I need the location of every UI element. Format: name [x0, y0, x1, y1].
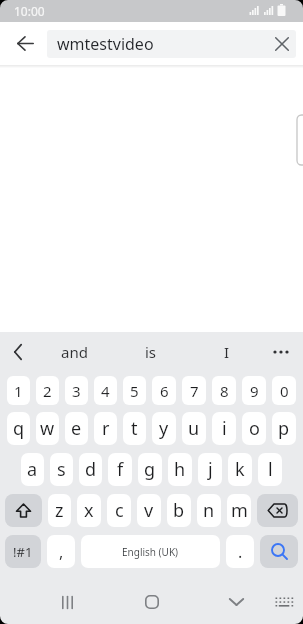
- staticText: ,: [59, 541, 64, 563]
- button[interactable]: u: [182, 412, 206, 445]
- staticText: w: [40, 416, 55, 441]
- staticText: e: [71, 416, 82, 441]
- staticText: I: [224, 342, 230, 362]
- button[interactable]: g: [138, 453, 162, 486]
- button[interactable]: !#1: [5, 535, 41, 568]
- staticText: 1: [14, 381, 23, 401]
- staticText: is: [145, 342, 157, 362]
- staticText: v: [144, 498, 154, 523]
- button[interactable]: h: [168, 453, 192, 486]
- button[interactable]: f: [108, 453, 132, 486]
- staticText: 5: [130, 381, 139, 401]
- staticText: and: [61, 342, 88, 362]
- staticText: t: [131, 416, 138, 441]
- button[interactable]: ,: [47, 535, 75, 568]
- button[interactable]: 2: [36, 376, 59, 405]
- button[interactable]: e: [65, 412, 88, 445]
- staticText: n: [203, 498, 215, 523]
- staticText: 9: [250, 381, 259, 401]
- button[interactable]: j: [198, 453, 222, 486]
- staticText: 8: [220, 381, 229, 401]
- staticText: a: [27, 457, 38, 482]
- button[interactable]: [257, 494, 298, 527]
- staticText: u: [188, 416, 200, 441]
- button[interactable]: 6: [152, 376, 176, 405]
- button[interactable]: 1: [7, 376, 30, 405]
- button[interactable]: d: [79, 453, 102, 486]
- button[interactable]: w: [36, 412, 59, 445]
- staticText: y: [159, 416, 169, 441]
- button[interactable]: 3: [65, 376, 88, 405]
- button[interactable]: [5, 494, 42, 527]
- staticText: z: [55, 498, 64, 523]
- staticText: d: [85, 457, 97, 482]
- staticText: f: [117, 457, 124, 482]
- staticText: 2: [43, 381, 52, 401]
- staticText: j: [208, 457, 213, 482]
- button[interactable]: 7: [182, 376, 206, 405]
- button[interactable]: 0: [272, 376, 296, 405]
- button[interactable]: 9: [242, 376, 266, 405]
- staticText: x: [84, 498, 94, 523]
- button[interactable]: t: [123, 412, 146, 445]
- button[interactable]: m: [227, 494, 251, 527]
- button[interactable]: q: [7, 412, 30, 445]
- staticText: 0: [280, 381, 289, 401]
- staticText: English (UK): [122, 545, 179, 559]
- button[interactable]: p: [272, 412, 296, 445]
- button[interactable]: 5: [123, 376, 146, 405]
- button[interactable]: y: [152, 412, 176, 445]
- button[interactable]: [47, 582, 87, 622]
- staticText: .: [238, 541, 243, 563]
- button[interactable]: and: [44, 332, 104, 372]
- button[interactable]: k: [228, 453, 252, 486]
- button[interactable]: [4, 338, 32, 366]
- button[interactable]: n: [197, 494, 221, 527]
- staticText: g: [144, 457, 156, 482]
- staticText: p: [278, 416, 290, 441]
- staticText: !#1: [13, 543, 33, 561]
- staticText: k: [235, 457, 245, 482]
- button[interactable]: [132, 582, 172, 622]
- staticText: i: [222, 416, 227, 441]
- staticText: 7: [190, 381, 199, 401]
- button[interactable]: [270, 32, 294, 56]
- button[interactable]: [0, 22, 44, 65]
- staticText: m: [231, 498, 248, 523]
- button[interactable]: 8: [212, 376, 236, 405]
- staticText: b: [173, 498, 185, 523]
- button[interactable]: 4: [94, 376, 117, 405]
- staticText: o: [249, 416, 260, 441]
- button[interactable]: is: [121, 332, 181, 372]
- button[interactable]: b: [167, 494, 191, 527]
- button[interactable]: .: [226, 535, 254, 568]
- staticText: c: [115, 498, 124, 523]
- button[interactable]: [268, 339, 294, 365]
- button[interactable]: v: [137, 494, 161, 527]
- button[interactable]: c: [107, 494, 131, 527]
- button[interactable]: [216, 582, 256, 622]
- button[interactable]: wmtestvideo: [47, 30, 296, 58]
- button[interactable]: z: [48, 494, 71, 527]
- staticText: q: [13, 416, 25, 441]
- staticText: 3: [72, 381, 81, 401]
- staticText: 4: [101, 381, 110, 401]
- staticText: 6: [160, 381, 169, 401]
- button[interactable]: [268, 586, 300, 618]
- button[interactable]: a: [21, 453, 44, 486]
- staticText: wmtestvideo: [57, 33, 154, 55]
- button[interactable]: x: [77, 494, 101, 527]
- button[interactable]: I: [197, 332, 257, 372]
- staticText: l: [268, 457, 273, 482]
- staticText: h: [174, 457, 186, 482]
- button[interactable]: s: [50, 453, 73, 486]
- staticText: r: [102, 416, 110, 441]
- button[interactable]: o: [242, 412, 266, 445]
- button[interactable]: r: [94, 412, 117, 445]
- button[interactable]: English (UK): [81, 535, 220, 568]
- button[interactable]: [260, 535, 298, 568]
- staticText: 10:00: [14, 3, 45, 19]
- button[interactable]: l: [258, 453, 282, 486]
- staticText: s: [57, 457, 66, 482]
- button[interactable]: i: [212, 412, 236, 445]
